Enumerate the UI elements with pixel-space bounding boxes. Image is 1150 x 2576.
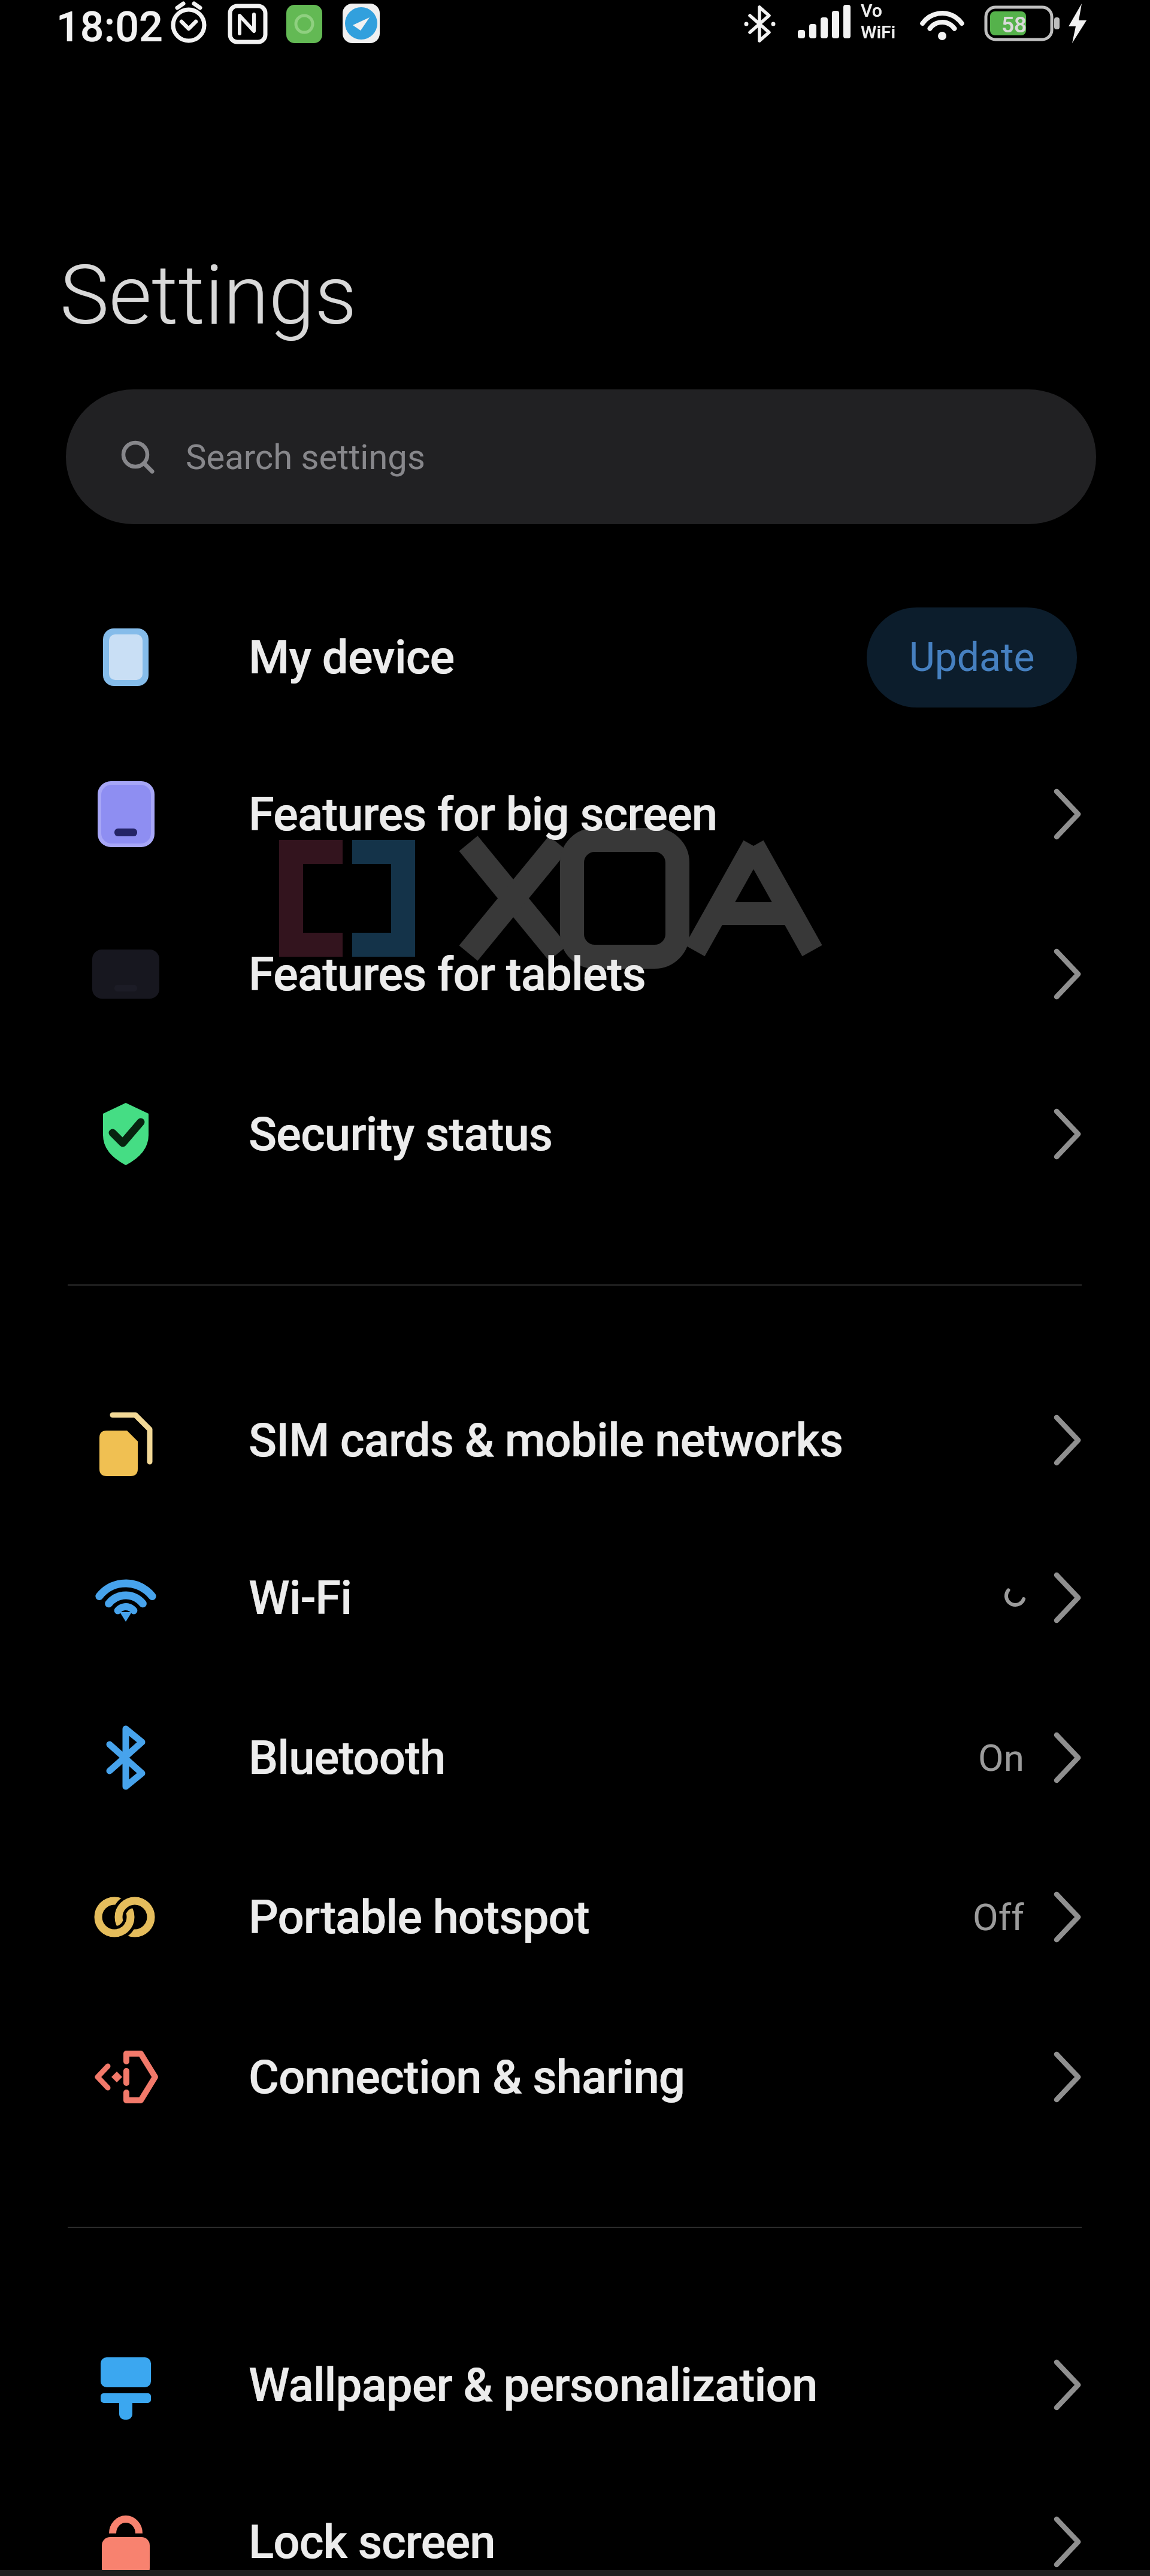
staticText: Update bbox=[909, 634, 1035, 681]
staticText: Off bbox=[973, 1895, 1024, 1939]
staticText: Wi-Fi bbox=[249, 1571, 352, 1625]
button[interactable]: Portable hotspot bbox=[0, 1837, 1150, 1997]
button[interactable]: Wi-Fi bbox=[0, 1518, 1150, 1677]
staticText: Security status bbox=[249, 1107, 553, 1162]
staticText: On bbox=[978, 1736, 1024, 1780]
button[interactable]: Search settings bbox=[66, 389, 1096, 524]
button[interactable]: Lock screen bbox=[0, 2462, 1150, 2576]
staticText: Settings bbox=[60, 247, 357, 344]
button[interactable]: Update bbox=[867, 607, 1077, 708]
button[interactable]: Features for big screen bbox=[0, 734, 1150, 894]
button[interactable]: Connection & sharing bbox=[0, 1997, 1150, 2157]
staticText: Lock screen bbox=[249, 2515, 495, 2569]
button[interactable]: My device bbox=[0, 578, 1150, 737]
staticText: 18:02 bbox=[56, 2, 163, 52]
staticText: 58 bbox=[1001, 12, 1027, 38]
staticText: My device bbox=[249, 630, 455, 685]
button[interactable]: Wallpaper & personalization bbox=[0, 2305, 1150, 2465]
staticText: Features for big screen bbox=[249, 787, 718, 842]
staticText: SIM cards & mobile networks bbox=[249, 1413, 843, 1468]
button[interactable]: Security status bbox=[0, 1054, 1150, 1214]
staticText: Vo bbox=[861, 0, 882, 21]
staticText: WiFi bbox=[861, 22, 896, 43]
staticText: Wallpaper & personalization bbox=[249, 2358, 818, 2412]
staticText: Connection & sharing bbox=[249, 2050, 685, 2105]
button[interactable]: SIM cards & mobile networks bbox=[0, 1360, 1150, 1520]
staticText: Bluetooth bbox=[249, 1731, 446, 1785]
staticText: Search settings bbox=[186, 437, 425, 477]
button[interactable]: Bluetooth bbox=[0, 1678, 1150, 1837]
button[interactable]: Features for tablets bbox=[0, 894, 1150, 1054]
staticText: Features for tablets bbox=[249, 947, 646, 1002]
staticText: Portable hotspot bbox=[249, 1890, 589, 1945]
